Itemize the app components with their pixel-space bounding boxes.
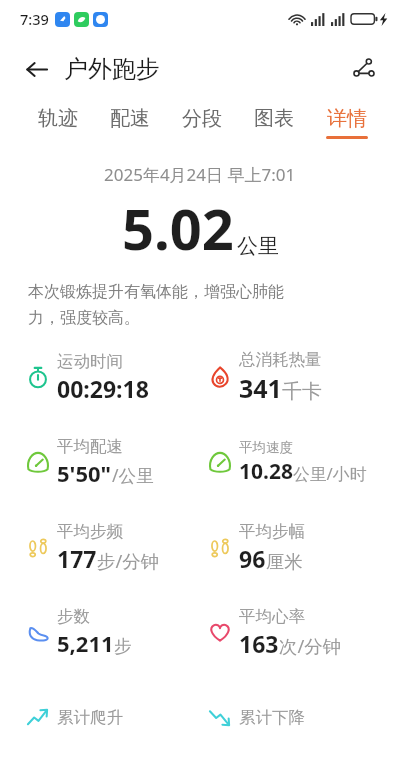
button[interactable]: 平均步幅 xyxy=(200,516,400,578)
staticText: 7:39 xyxy=(20,9,49,29)
staticText: 5'50" xyxy=(57,458,112,488)
staticText: 次/分钟 xyxy=(279,633,342,658)
staticText: 详情 xyxy=(327,106,367,131)
button[interactable]: 累计爬升 xyxy=(0,686,200,748)
button[interactable]: 步数 xyxy=(0,601,200,663)
button[interactable]: 平均步频 xyxy=(0,516,200,578)
staticText: 配速 xyxy=(110,106,150,131)
staticText: 运动时间 xyxy=(57,351,123,372)
staticText: 平均步幅 xyxy=(239,521,305,542)
staticText: 总消耗热量 xyxy=(239,349,322,370)
button[interactable]: 累计下降 xyxy=(200,686,400,748)
staticText: 轨迹 xyxy=(38,106,78,131)
button[interactable]: 平均配速 xyxy=(0,431,200,493)
staticText: 累计下降 xyxy=(239,707,305,728)
button[interactable]: 图表 xyxy=(252,100,296,145)
button[interactable]: 平均速度 xyxy=(200,431,400,493)
staticText: 图表 xyxy=(254,106,294,131)
staticText: 10.28 xyxy=(239,457,293,486)
staticText: 公里 xyxy=(237,233,279,259)
staticText: 5,211 xyxy=(57,628,114,658)
staticText: 177 xyxy=(57,543,97,574)
button[interactable]: 配速 xyxy=(108,100,152,145)
staticText: 步数 xyxy=(57,606,90,627)
staticText: 累计爬升 xyxy=(57,707,123,728)
staticText: 千卡 xyxy=(282,379,322,404)
staticText: 341 xyxy=(239,371,282,405)
button[interactable]: Share xyxy=(342,47,386,91)
button[interactable]: 总消耗热量 xyxy=(200,346,400,408)
staticText: 5.02 xyxy=(122,190,234,266)
staticText: 96 xyxy=(239,543,266,574)
staticText: /公里 xyxy=(112,463,154,487)
staticText: 00:29:18 xyxy=(57,373,149,404)
staticText: 步 xyxy=(114,635,132,657)
staticText: 步/分钟 xyxy=(97,548,160,573)
staticText: 分段 xyxy=(182,106,222,131)
staticText: 平均步频 xyxy=(57,521,123,542)
staticText: 本次锻炼提升有氧体能，增强心肺能 力，强度较高。 xyxy=(28,282,284,328)
staticText: 2025年4月24日 早上7:01 xyxy=(104,163,296,186)
button[interactable]: 分段 xyxy=(180,100,224,145)
staticText: 厘米 xyxy=(266,550,303,573)
staticText: 平均心率 xyxy=(239,606,305,627)
staticText: 户外跑步 xyxy=(64,54,160,84)
button[interactable]: Back xyxy=(14,47,58,91)
button[interactable]: 详情 xyxy=(324,100,370,145)
button[interactable]: 平均心率 xyxy=(200,601,400,663)
staticText: 163 xyxy=(239,628,279,659)
staticText: 公里/小时 xyxy=(293,462,367,485)
button[interactable]: 运动时间 xyxy=(0,346,200,408)
staticText: 平均速度 xyxy=(239,439,293,456)
staticText: 平均配速 xyxy=(57,436,123,457)
button[interactable]: 轨迹 xyxy=(36,100,80,145)
